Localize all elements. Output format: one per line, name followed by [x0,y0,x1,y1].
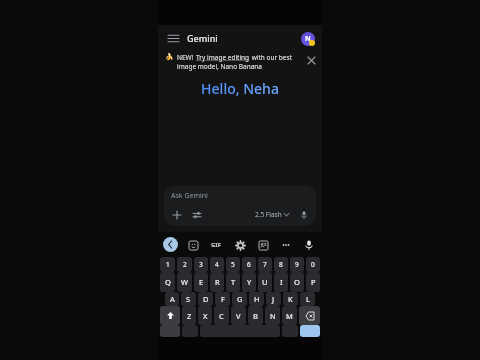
staticText: Gemini [187,32,218,44]
staticText: G [237,294,243,304]
button[interactable]: L [300,292,315,306]
button[interactable]: N [265,306,280,325]
staticText: 9 [295,260,299,269]
button[interactable]: H [249,292,264,306]
button[interactable]: Shift [160,306,180,325]
button[interactable]: A [165,292,179,306]
button[interactable]: More options [278,237,294,253]
staticText: 2.5 Flash [255,210,282,219]
button[interactable]: G [232,292,247,306]
staticText: W [181,277,188,287]
button[interactable]: 2.5 Flash [253,208,291,221]
staticText: Try image editing [196,53,250,62]
staticText: K [288,294,293,304]
button[interactable]: Y [242,272,256,292]
button[interactable]: Emoji [185,237,201,253]
staticText: N [270,311,276,321]
button[interactable]: 4 [210,257,224,272]
button[interactable]: V [231,306,246,325]
staticText: Y [247,277,252,287]
staticText: Hello, Neha [201,79,279,98]
staticText: 1 [166,260,170,269]
button[interactable]: Clipboard [255,237,271,253]
button[interactable]: Comma [182,325,198,337]
staticText: R [215,277,220,287]
staticText: D [203,294,209,304]
staticText: C [219,311,224,321]
button[interactable]: X [198,306,212,325]
button[interactable]: Period [282,325,298,337]
staticText: U [262,277,268,287]
button[interactable]: P [306,272,320,292]
staticText: T [231,277,236,287]
button[interactable]: I [274,272,288,292]
staticText: 7 [263,260,267,269]
staticText: 2 [183,260,187,269]
button[interactable]: 0 [306,257,320,272]
staticText: F [221,294,225,304]
button[interactable]: J [266,292,281,306]
button[interactable]: 6 [242,257,256,272]
button[interactable]: Tools [191,209,202,220]
button[interactable]: Ask Gemini [164,186,316,226]
staticText: Q [165,277,171,287]
button[interactable]: Q [160,272,175,292]
button[interactable]: Enter [300,325,320,337]
button[interactable]: Voice input [298,209,309,220]
button[interactable]: 1 [160,257,175,272]
staticText: M [286,311,293,321]
button[interactable]: GIF [208,237,224,253]
button[interactable]: Settings [232,237,248,253]
button[interactable]: T [226,272,240,292]
staticText: N [305,34,311,44]
button[interactable]: 5 [226,257,240,272]
button[interactable]: 7 [258,257,272,272]
button[interactable]: U [258,272,272,292]
button[interactable]: 2 [177,257,192,272]
button[interactable]: K [283,292,298,306]
staticText: Z [187,311,192,321]
staticText: 8 [279,260,283,269]
staticText: V [236,311,241,321]
staticText: Ask Gemini [171,191,208,201]
button[interactable]: B [248,306,263,325]
button[interactable]: Dismiss [304,53,318,67]
staticText: 🍌 [165,53,174,61]
staticText: E [199,277,204,287]
staticText: L [306,294,310,304]
button[interactable]: W [177,272,192,292]
button[interactable]: S [181,292,196,306]
button[interactable]: C [214,306,229,325]
button[interactable]: R [210,272,224,292]
button[interactable]: F [215,292,230,306]
button[interactable]: D [198,292,213,306]
button[interactable]: E [194,272,208,292]
button[interactable]: Z [182,306,196,325]
button[interactable]: Back [163,237,178,252]
button[interactable]: 3 [194,257,208,272]
staticText: B [253,311,258,321]
button[interactable]: O [290,272,304,292]
button[interactable]: M [282,306,297,325]
staticText: O [294,277,300,287]
button[interactable]: Account [300,31,315,46]
staticText: 6 [247,260,251,269]
button[interactable]: 8 [274,257,288,272]
staticText: 4 [215,260,219,269]
staticText: S [186,294,191,304]
staticText: J [272,294,275,304]
button[interactable]: Symbols [160,325,180,337]
staticText: I [280,277,283,287]
staticText: A [170,294,175,304]
button[interactable]: Backspace [299,306,320,325]
staticText: with our best [250,53,292,62]
staticText: GIF [211,241,221,249]
button[interactable]: Menu [165,30,181,46]
staticText: H [254,294,260,304]
button[interactable]: 9 [290,257,304,272]
button[interactable]: Voice typing [301,237,317,253]
button[interactable]: Add [171,209,182,220]
staticText: 3 [199,260,203,269]
staticText: X [203,311,208,321]
